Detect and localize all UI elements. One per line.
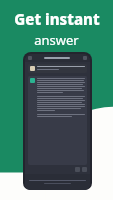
button[interactable] bbox=[30, 66, 85, 71]
button[interactable] bbox=[30, 78, 85, 163]
button[interactable]: More options bbox=[83, 56, 87, 60]
staticText: Get instant bbox=[14, 9, 100, 29]
staticText: answer bbox=[34, 31, 79, 49]
button[interactable]: Menu bbox=[28, 56, 32, 60]
